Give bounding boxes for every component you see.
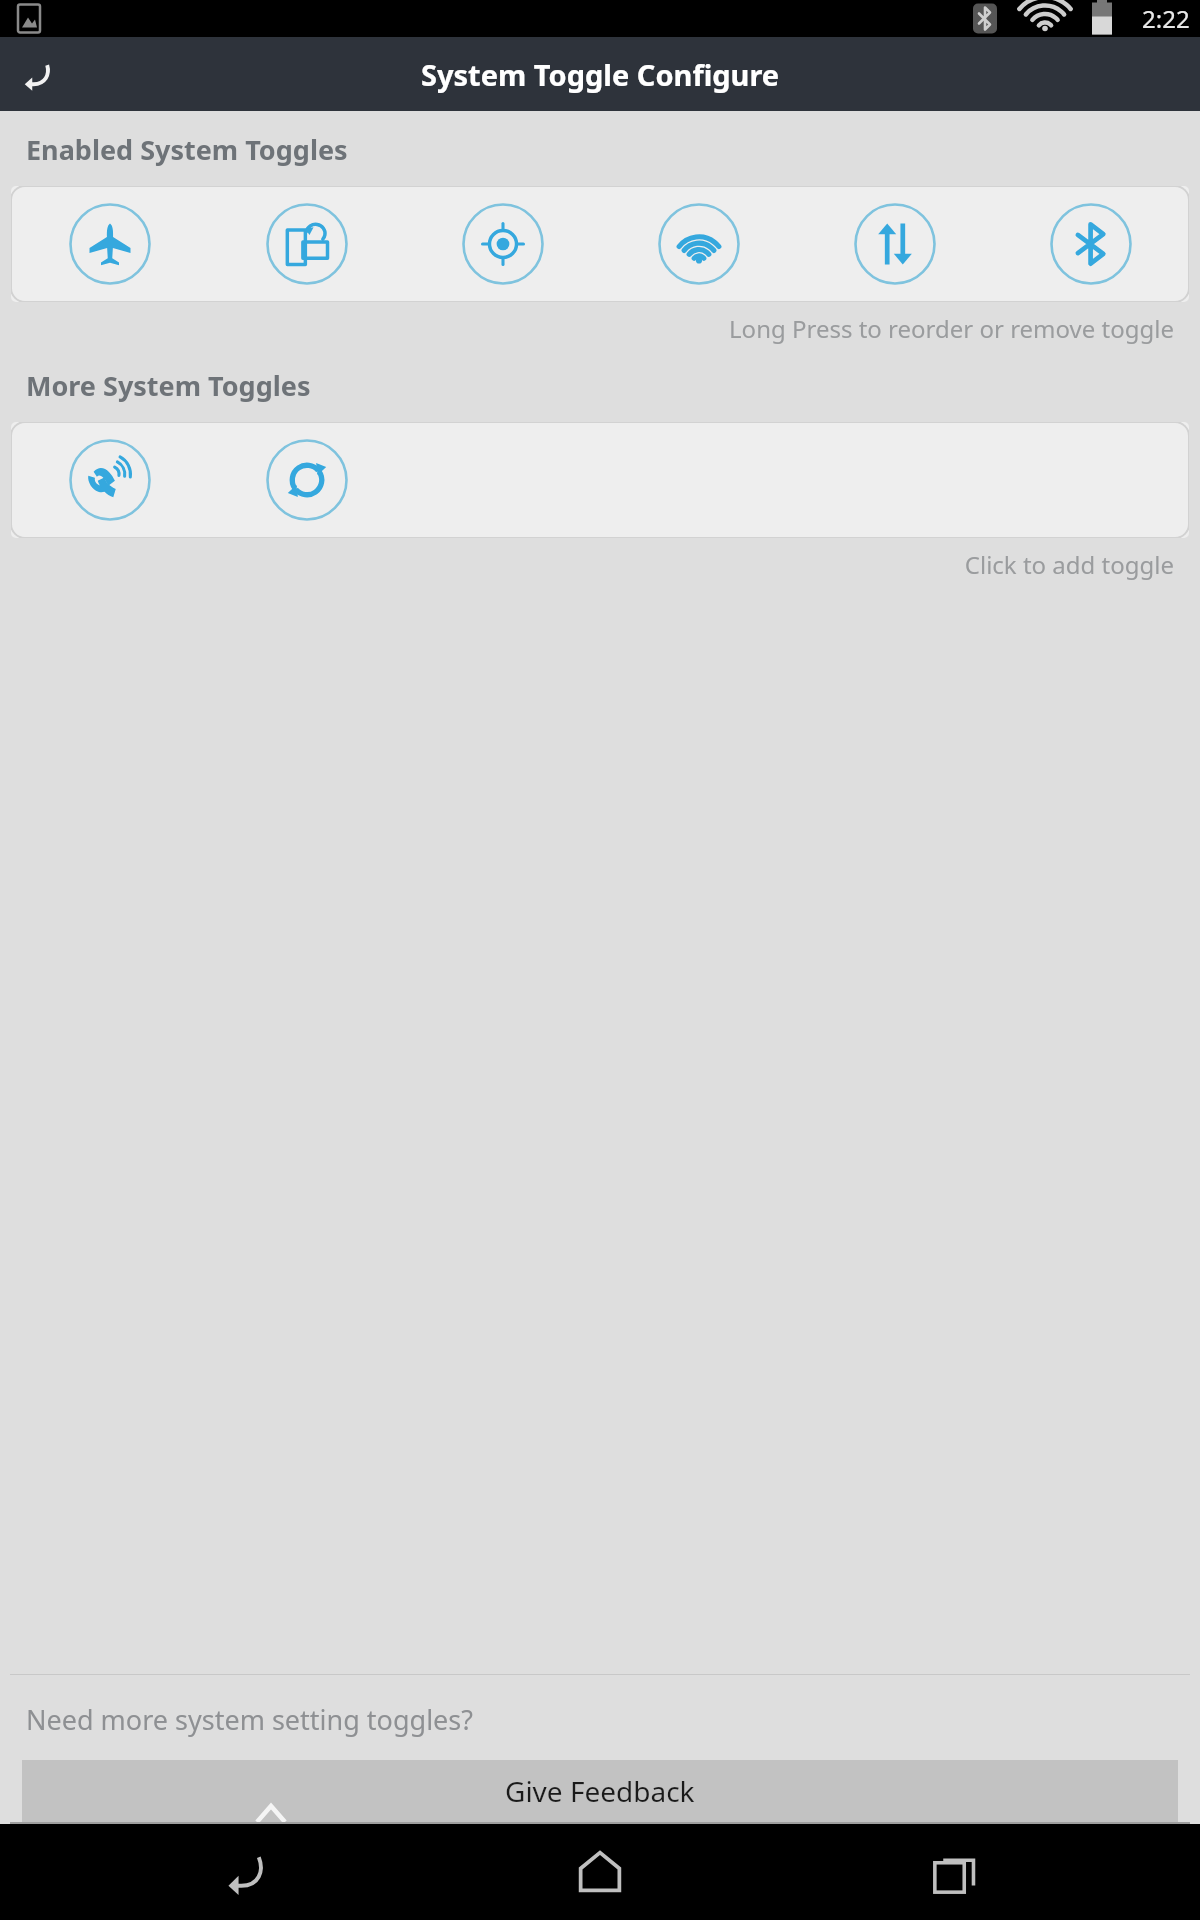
button[interactable]: Airplane mode xyxy=(65,199,155,289)
button[interactable]: Home xyxy=(555,1827,645,1917)
button[interactable]: Wi-Fi xyxy=(654,199,744,289)
button[interactable]: Mobile data xyxy=(850,199,940,289)
button[interactable]: Back xyxy=(0,37,74,111)
button[interactable]: Location xyxy=(458,199,548,289)
staticText: Give Feedback xyxy=(505,1772,695,1810)
button[interactable]: Give Feedback xyxy=(22,1760,1178,1822)
staticText: Long Press to reorder or remove toggle xyxy=(0,312,1174,345)
button[interactable]: Auto rotate xyxy=(262,199,352,289)
button[interactable]: Sync xyxy=(262,435,352,525)
button[interactable]: Back xyxy=(200,1827,290,1917)
staticText: 2:22 xyxy=(1142,2,1190,35)
staticText: More System Toggles xyxy=(26,367,311,404)
button[interactable]: Recent apps xyxy=(910,1827,1000,1917)
staticText: Need more system setting toggles? xyxy=(26,1701,473,1738)
button[interactable]: Bluetooth xyxy=(1046,199,1136,289)
staticText: System Toggle Configure xyxy=(421,55,780,94)
staticText: Click to add toggle xyxy=(0,548,1174,581)
button[interactable]: Ringer mode xyxy=(65,435,155,525)
staticText: Enabled System Toggles xyxy=(26,131,348,168)
